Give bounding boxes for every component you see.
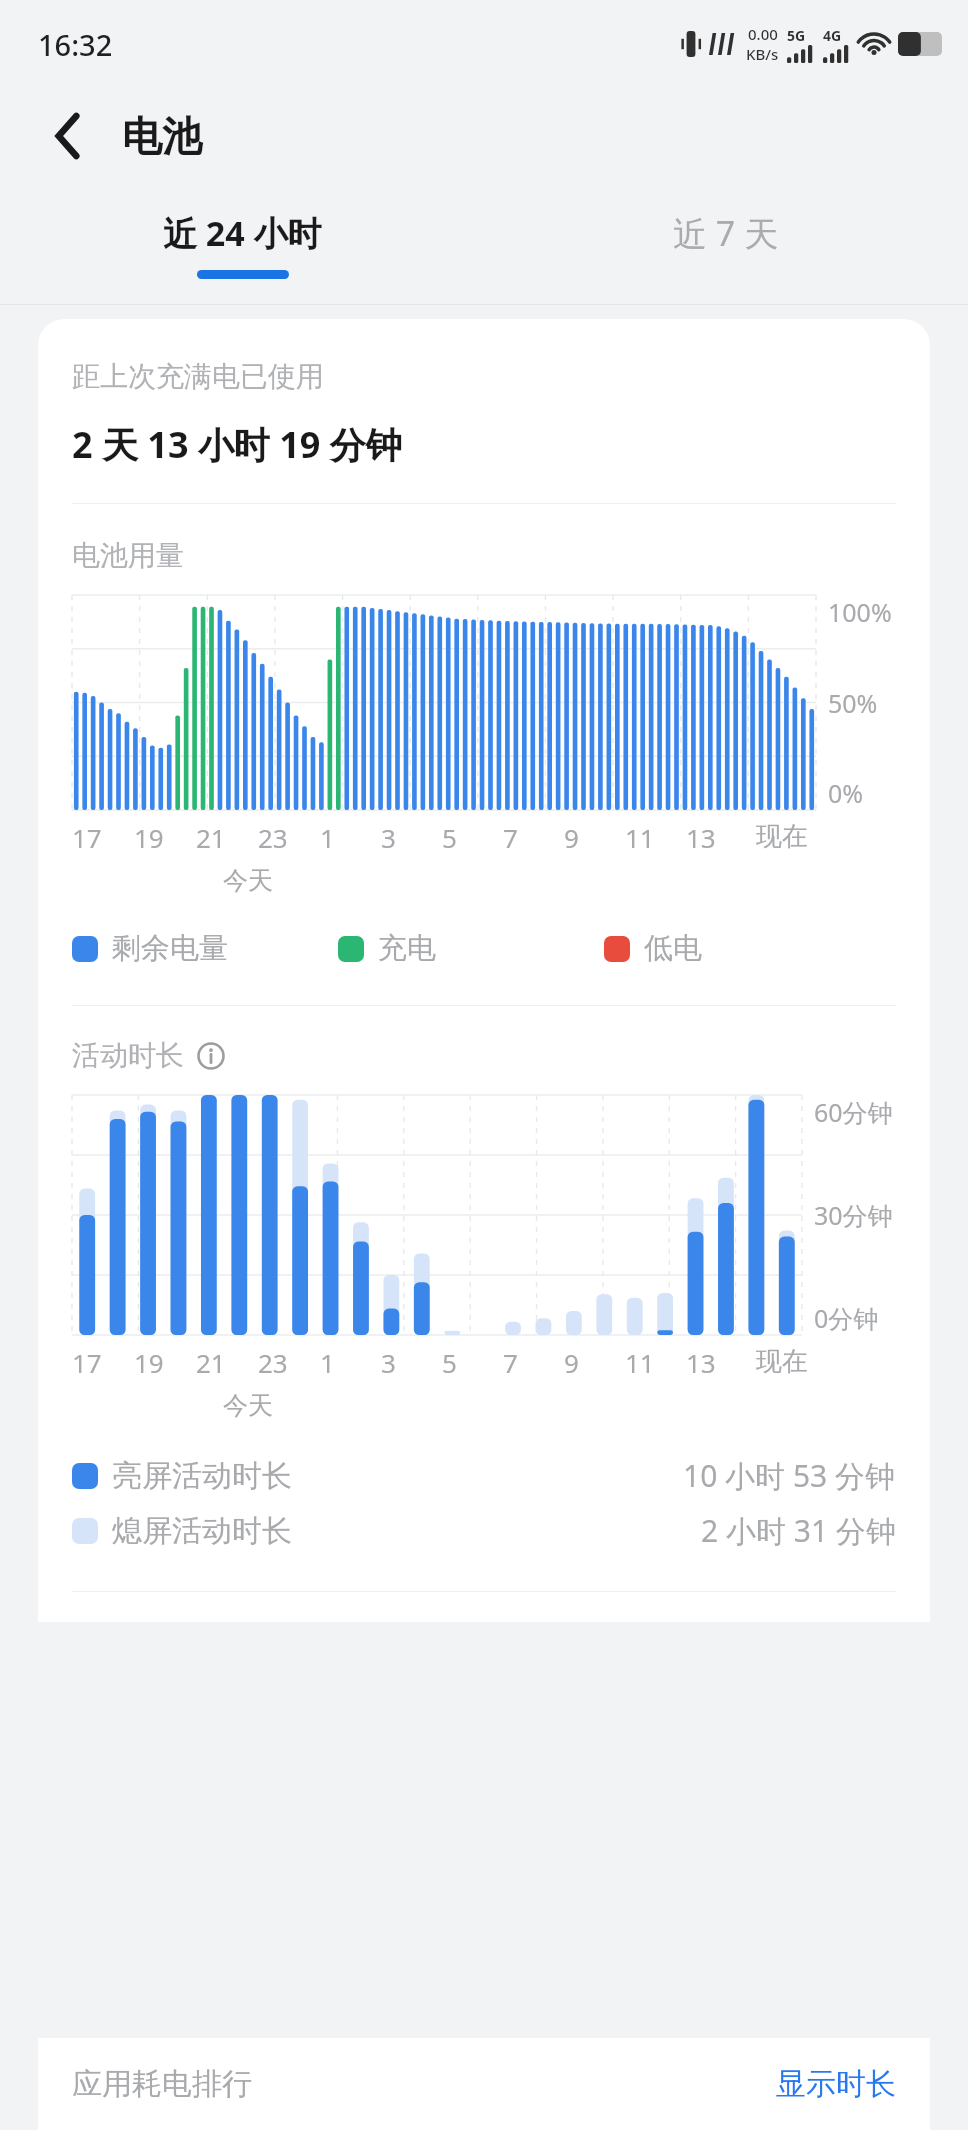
staticText: 11: [625, 1345, 655, 1380]
button[interactable]: 近 24 小时: [0, 184, 484, 304]
staticText: 5G: [787, 26, 806, 45]
staticText: 近 7 天: [673, 210, 779, 256]
staticText: 2 天 13 小时 19 分钟: [72, 420, 402, 469]
staticText: 2 小时 31 分钟: [701, 1510, 896, 1551]
staticText: 100%: [828, 595, 892, 629]
staticText: 21: [196, 820, 226, 855]
staticText: 0分钟: [814, 1301, 879, 1335]
staticText: 近 24 小时: [163, 210, 322, 256]
staticText: 50%: [828, 686, 878, 720]
staticText: KB/s: [746, 44, 779, 64]
staticText: 5: [442, 820, 457, 855]
button[interactable]: 显示时长: [776, 2065, 896, 2103]
staticText: 剩余电量: [112, 930, 228, 967]
staticText: 19: [134, 820, 164, 855]
staticText: 7: [503, 1345, 518, 1380]
staticText: 5: [442, 1345, 457, 1380]
staticText: 16:32: [38, 25, 113, 64]
staticText: 3: [381, 820, 396, 855]
staticText: 13: [686, 1345, 716, 1380]
staticText: 10 小时 53 分钟: [683, 1455, 896, 1496]
staticText: 19: [134, 1345, 164, 1380]
staticText: 1: [320, 1345, 335, 1380]
staticText: 现在: [756, 820, 808, 853]
staticText: 活动时长: [72, 1038, 184, 1073]
button[interactable]: 近 7 天: [484, 184, 968, 304]
staticText: 今天: [223, 865, 273, 896]
staticText: 17: [72, 820, 102, 855]
staticText: 21: [196, 1345, 226, 1380]
staticText: 9: [564, 820, 579, 855]
staticText: 电池: [122, 111, 202, 161]
staticText: 7: [503, 820, 518, 855]
staticText: 电池用量: [72, 538, 184, 573]
staticText: 距上次充满电已使用: [72, 359, 324, 394]
staticText: 3: [381, 1345, 396, 1380]
staticText: 现在: [756, 1345, 808, 1378]
button[interactable]: Back: [40, 108, 96, 164]
staticText: 0%: [828, 776, 864, 810]
staticText: 23: [258, 820, 288, 855]
staticText: 今天: [223, 1390, 273, 1421]
staticText: 23: [258, 1345, 288, 1380]
button[interactable]: Info: [196, 1041, 226, 1071]
staticText: 13: [686, 820, 716, 855]
staticText: 30分钟: [814, 1198, 893, 1232]
staticText: 低电: [644, 930, 702, 967]
staticText: 60分钟: [814, 1095, 893, 1129]
staticText: 1: [320, 820, 335, 855]
staticText: 9: [564, 1345, 579, 1380]
staticText: 4G: [823, 26, 842, 45]
staticText: 显示时长: [776, 2065, 896, 2103]
staticText: 17: [72, 1345, 102, 1380]
staticText: 亮屏活动时长: [112, 1457, 292, 1495]
staticText: 0.00: [748, 24, 778, 44]
staticText: 熄屏活动时长: [112, 1512, 292, 1550]
staticText: 应用耗电排行: [72, 2065, 252, 2103]
staticText: 充电: [378, 930, 436, 967]
staticText: 11: [625, 820, 655, 855]
